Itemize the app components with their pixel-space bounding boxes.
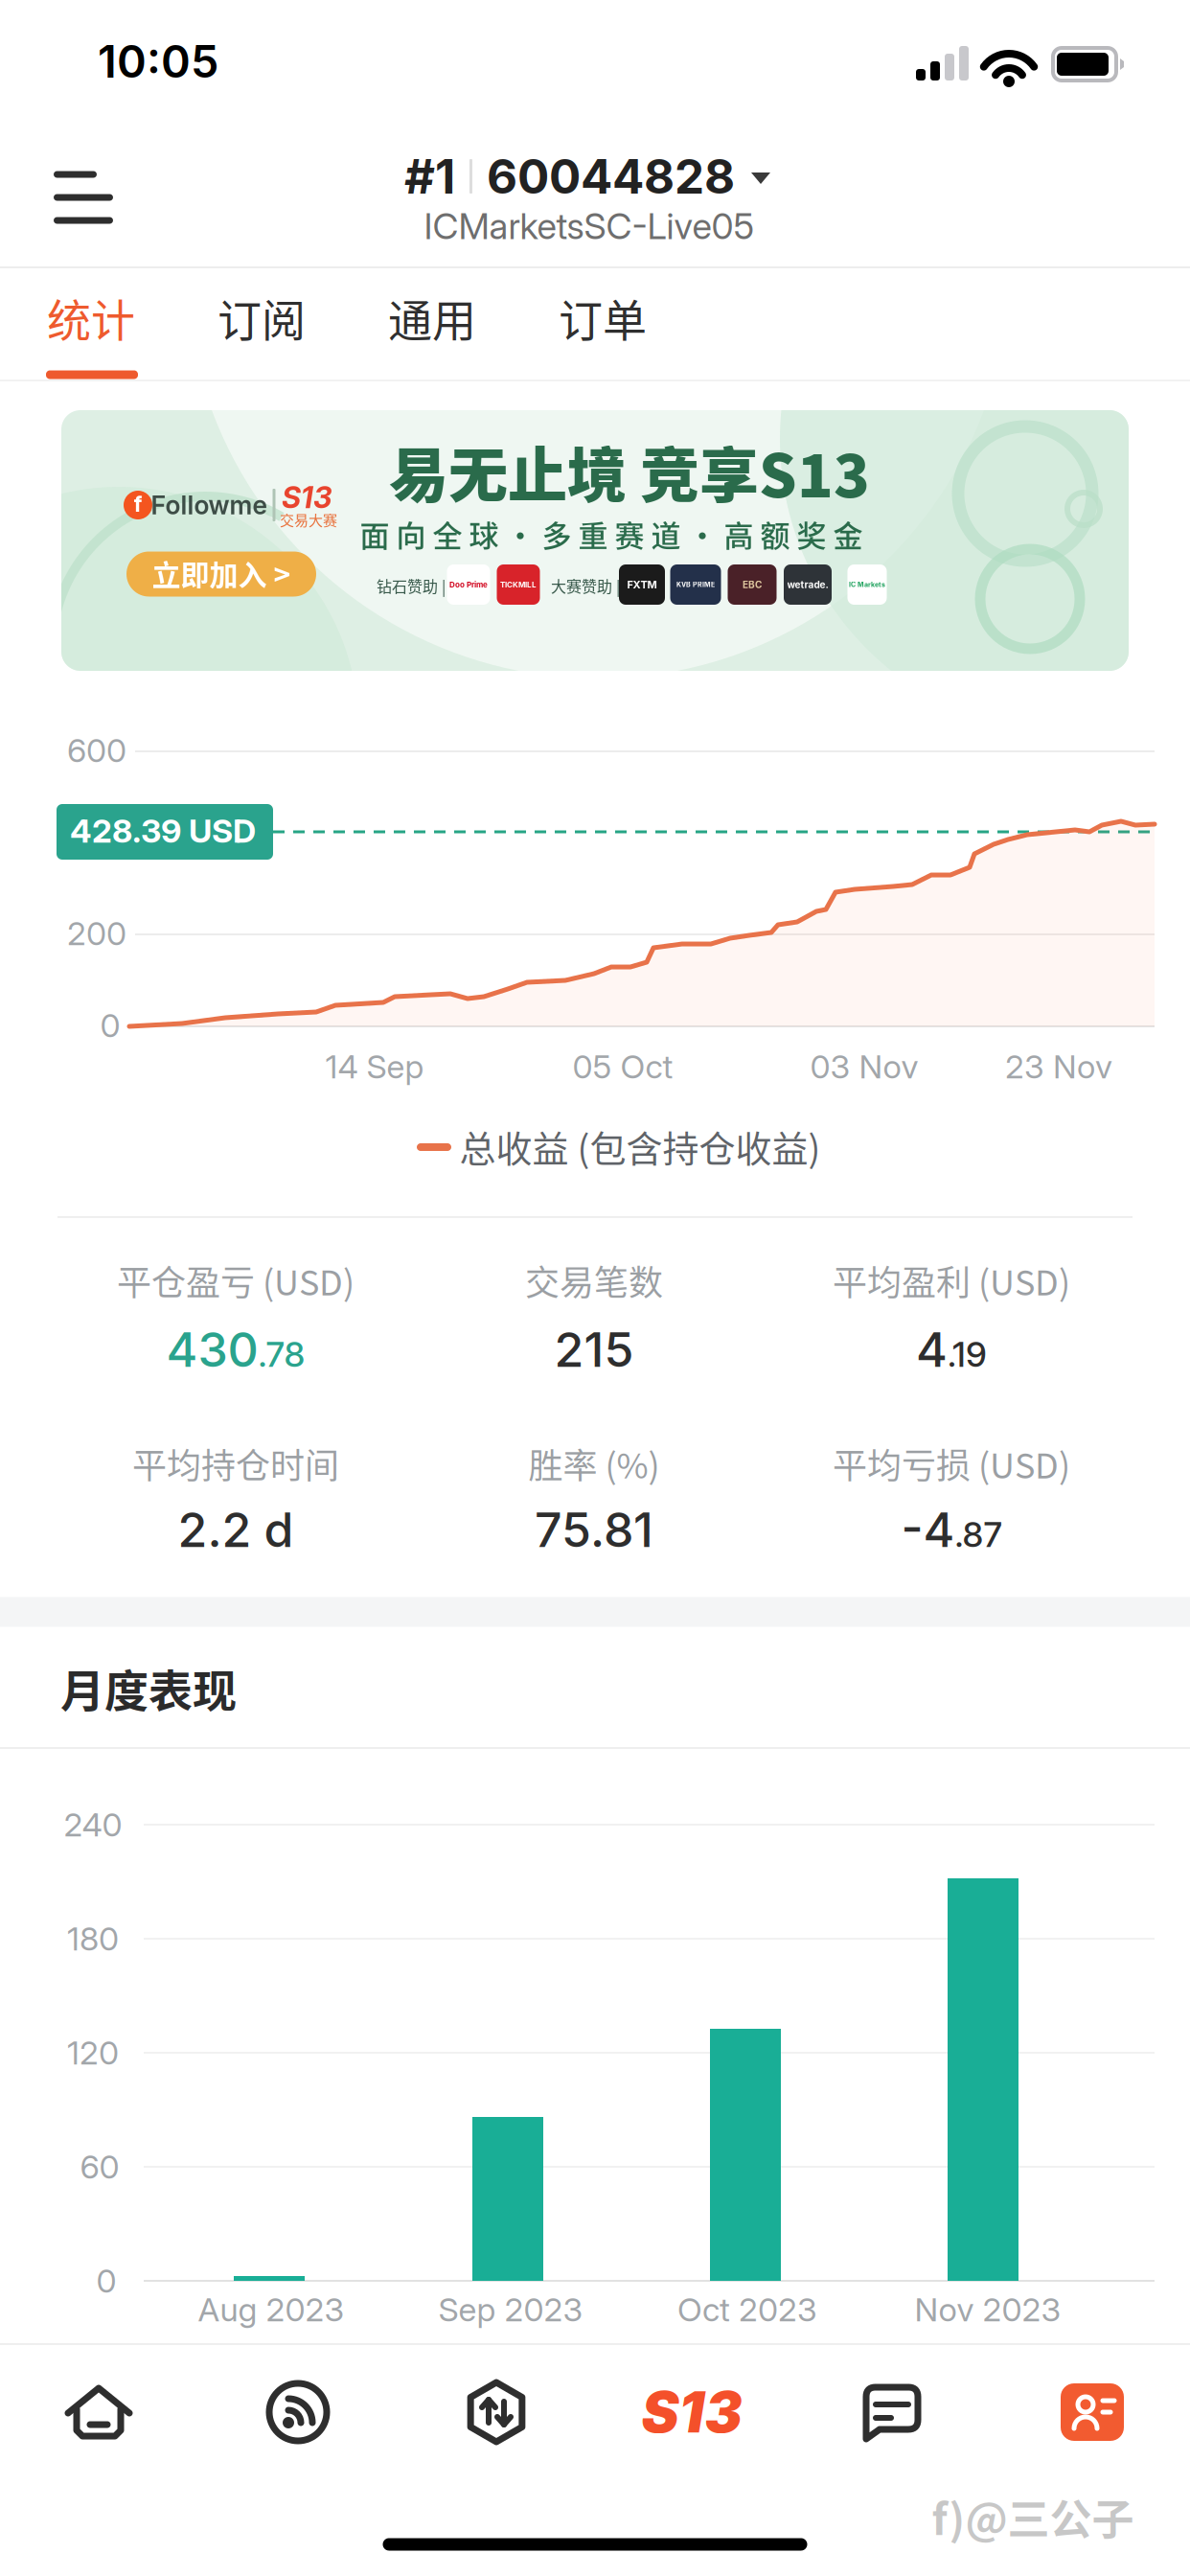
staticText: 200 (67, 914, 126, 953)
staticText: 05 Oct (572, 1047, 673, 1086)
button[interactable]: Home (64, 2382, 133, 2442)
staticText: 0 (100, 1006, 120, 1045)
button[interactable]: 订阅 (195, 274, 329, 360)
staticText: 60 (80, 2147, 119, 2186)
staticText: S13 (641, 2378, 742, 2446)
staticText: Sep 2023 (438, 2290, 583, 2329)
staticText: f)@三公子 (932, 2486, 1134, 2547)
staticText: 23 Nov (1005, 1047, 1112, 1086)
staticText: 0 (96, 2261, 116, 2300)
staticText: 平仓盈亏 (USD) (117, 1255, 355, 1305)
button[interactable]: Messages (858, 2380, 926, 2444)
staticText: 总收益 (包含持仓收益) (459, 1120, 821, 1173)
staticText: #1 (404, 148, 455, 205)
staticText: 立即加入 > (152, 552, 291, 594)
staticText: 订阅 (217, 285, 306, 349)
staticText: 60044828 (487, 148, 735, 205)
staticText: EBC (743, 579, 762, 590)
staticText: 交易笔数 (525, 1255, 663, 1305)
button[interactable]: 统计 (24, 274, 158, 360)
staticText: 14 Sep (325, 1047, 424, 1086)
staticText: wetrade. (787, 579, 828, 590)
staticText: 215 (554, 1320, 634, 1378)
staticText: 平均亏损 (USD) (833, 1438, 1070, 1488)
staticText: 平均持仓时间 (132, 1438, 339, 1488)
staticText: 订单 (559, 285, 647, 349)
staticText: 2.2 d (178, 1501, 294, 1559)
staticText: 428.39 USD (70, 811, 256, 851)
button[interactable]: Menu (51, 170, 114, 225)
staticText: ICMarketsSC-Live05 (424, 205, 755, 248)
staticText: 4 (916, 1320, 948, 1378)
staticText: Doo Prime (449, 580, 488, 589)
staticText: 240 (64, 1805, 122, 1844)
staticText: 03 Nov (810, 1047, 918, 1086)
staticText: 面 向 全 球 · 多 重 赛 道 · 高 额 奖 金 (360, 512, 863, 555)
staticText: 易无止境 竞享S13 (389, 428, 870, 515)
staticText: 钻石赞助 | (377, 574, 446, 597)
staticText: TICKMILL (500, 580, 537, 589)
staticText: 180 (67, 1919, 119, 1958)
staticText: .19 (948, 1333, 987, 1375)
button[interactable]: 订单 (536, 274, 670, 360)
staticText: 交易大赛 (280, 509, 337, 530)
staticText: 胜率 (%) (528, 1438, 660, 1488)
staticText: .87 (955, 1513, 1002, 1555)
staticText: 通用 (388, 285, 476, 349)
staticText: -4 (901, 1501, 955, 1559)
button[interactable]: Trades (463, 2380, 530, 2445)
button[interactable]: 通用 (365, 274, 499, 360)
staticText: Followme (151, 490, 267, 521)
staticText: 75.81 (535, 1501, 653, 1559)
staticText: IC Markets (849, 581, 885, 589)
button[interactable]: S13 competition (615, 2369, 768, 2455)
staticText: 120 (67, 2033, 119, 2072)
staticText: 统计 (47, 285, 135, 349)
staticText: Oct 2023 (677, 2290, 817, 2329)
button[interactable]: Feed (266, 2380, 330, 2444)
staticText: KVB PRIME (676, 581, 715, 589)
staticText: f (134, 491, 142, 517)
staticText: .78 (258, 1333, 305, 1375)
staticText: 月度表现 (60, 1656, 237, 1720)
staticText: 大赛赞助 | (551, 574, 620, 597)
staticText: 平均盈利 (USD) (833, 1255, 1070, 1305)
staticText: 600 (67, 731, 126, 770)
button[interactable]: f (61, 410, 1129, 671)
staticText: 430 (166, 1320, 258, 1378)
staticText: FXTM (627, 578, 657, 591)
staticText: 10:05 (98, 34, 218, 88)
button[interactable]: #1 (404, 148, 774, 205)
button[interactable]: Profile (1061, 2383, 1124, 2441)
staticText: S13 (282, 480, 332, 515)
staticText: Nov 2023 (915, 2290, 1061, 2329)
staticText: Aug 2023 (198, 2290, 344, 2329)
